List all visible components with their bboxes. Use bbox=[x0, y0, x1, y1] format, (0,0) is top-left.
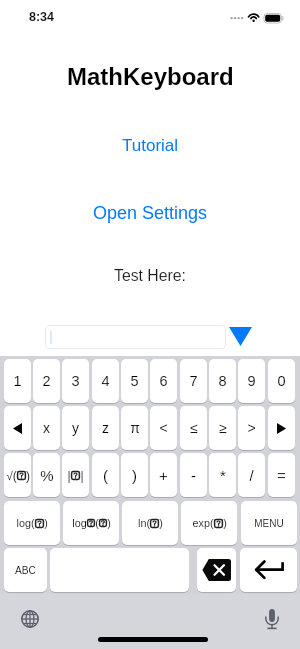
button[interactable]: 6 bbox=[150, 359, 177, 403]
staticText: 6 bbox=[159, 373, 168, 389]
button[interactable]: ≥ bbox=[209, 406, 236, 450]
button[interactable]: Tutorial bbox=[118, 134, 183, 156]
button[interactable]: 5 bbox=[121, 359, 148, 403]
staticText: ) bbox=[107, 517, 111, 529]
button[interactable]: % bbox=[33, 453, 60, 497]
button[interactable]: z bbox=[92, 406, 119, 450]
staticText: ABC bbox=[15, 565, 36, 576]
button[interactable]: ln( bbox=[122, 501, 178, 545]
button[interactable]: y bbox=[62, 406, 89, 450]
staticText: log( bbox=[16, 517, 35, 529]
button[interactable]: √( bbox=[4, 453, 31, 497]
button[interactable]: ) bbox=[121, 453, 148, 497]
button[interactable]: Open Settings bbox=[88, 200, 213, 225]
staticText: x bbox=[43, 420, 50, 436]
button[interactable]: 8 bbox=[209, 359, 236, 403]
staticText: y bbox=[72, 420, 79, 436]
button[interactable]: > bbox=[238, 406, 265, 450]
button[interactable]: Return bbox=[240, 548, 297, 592]
staticText: ) bbox=[132, 467, 137, 484]
button[interactable]: 4 bbox=[92, 359, 119, 403]
button[interactable]: π bbox=[121, 406, 148, 450]
staticText: exp( bbox=[192, 517, 214, 529]
staticText: ( bbox=[95, 517, 99, 529]
staticText: MENU bbox=[254, 518, 284, 529]
staticText: = bbox=[277, 467, 286, 484]
button[interactable]: 2 bbox=[33, 359, 60, 403]
button[interactable]: 9 bbox=[238, 359, 265, 403]
staticText: | bbox=[80, 469, 84, 482]
staticText: 8:34 bbox=[29, 10, 55, 24]
button[interactable]: 0 bbox=[268, 359, 295, 403]
button[interactable]: | bbox=[62, 453, 89, 497]
button[interactable]: 1 bbox=[4, 359, 31, 403]
staticText: < bbox=[159, 420, 168, 436]
staticText: 1 bbox=[13, 373, 22, 389]
staticText: | bbox=[67, 469, 71, 482]
button[interactable]: < bbox=[150, 406, 177, 450]
staticText: % bbox=[40, 467, 54, 484]
button[interactable]: Move right bbox=[268, 406, 295, 450]
button[interactable]: MENU bbox=[241, 501, 297, 545]
staticText: ≥ bbox=[219, 420, 227, 436]
button[interactable]: exp( bbox=[181, 501, 237, 545]
button[interactable]: log( bbox=[4, 501, 60, 545]
button[interactable]: ≤ bbox=[180, 406, 207, 450]
button[interactable]: + bbox=[150, 453, 177, 497]
staticText: 0 bbox=[277, 373, 286, 389]
staticText: ≤ bbox=[190, 420, 198, 436]
staticText: Test Here: bbox=[114, 267, 186, 285]
staticText: 2 bbox=[42, 373, 51, 389]
button[interactable]: 7 bbox=[180, 359, 207, 403]
button[interactable]: - bbox=[180, 453, 207, 497]
button[interactable]: ABC bbox=[4, 548, 47, 592]
staticText: > bbox=[247, 420, 256, 436]
staticText: + bbox=[159, 467, 168, 484]
button[interactable]: log bbox=[63, 501, 119, 545]
button[interactable] bbox=[45, 325, 226, 349]
staticText: ) bbox=[44, 517, 48, 529]
button[interactable]: x bbox=[33, 406, 60, 450]
button[interactable]: Backspace bbox=[197, 548, 236, 592]
button[interactable]: / bbox=[238, 453, 265, 497]
button[interactable]: ( bbox=[92, 453, 119, 497]
staticText: 8 bbox=[218, 373, 227, 389]
staticText: 7 bbox=[189, 373, 198, 389]
staticText: / bbox=[249, 467, 254, 484]
staticText: Open Settings bbox=[93, 203, 208, 223]
button[interactable]: Show keyboard bbox=[229, 327, 252, 346]
button[interactable]: Voice input bbox=[253, 600, 291, 638]
staticText: ) bbox=[223, 517, 227, 529]
staticText: ln( bbox=[138, 517, 150, 529]
staticText: MathKeyboard bbox=[67, 63, 234, 90]
staticText: z bbox=[102, 420, 109, 436]
staticText: π bbox=[130, 420, 140, 436]
staticText: Tutorial bbox=[122, 136, 179, 155]
staticText: 5 bbox=[130, 373, 139, 389]
staticText: ( bbox=[103, 467, 108, 484]
button[interactable]: * bbox=[209, 453, 236, 497]
staticText: √( bbox=[6, 469, 17, 482]
staticText: 4 bbox=[101, 373, 110, 389]
staticText: 9 bbox=[247, 373, 256, 389]
staticText: 3 bbox=[71, 373, 80, 389]
button[interactable]: 3 bbox=[62, 359, 89, 403]
staticText: ) bbox=[159, 517, 163, 529]
staticText: - bbox=[191, 467, 196, 484]
button[interactable]: Change keyboard bbox=[11, 600, 49, 638]
staticText: log bbox=[72, 517, 87, 529]
button[interactable]: = bbox=[268, 453, 295, 497]
staticText: ) bbox=[26, 469, 30, 482]
button[interactable] bbox=[50, 548, 189, 592]
staticText: * bbox=[220, 467, 226, 484]
button[interactable]: Move left bbox=[4, 406, 31, 450]
